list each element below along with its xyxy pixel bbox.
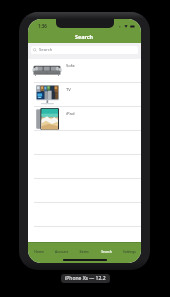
button[interactable]: Search xyxy=(31,46,138,54)
button[interactable]: Account xyxy=(50,249,72,263)
button[interactable]: Home xyxy=(28,249,50,263)
staticText: Sofa xyxy=(66,63,75,69)
staticText: Search xyxy=(39,47,53,53)
button[interactable]: Sofa xyxy=(28,59,141,83)
button[interactable]: Settings xyxy=(118,249,141,263)
staticText: Settings xyxy=(123,249,136,254)
button[interactable]: iPad xyxy=(28,107,141,131)
staticText: Search xyxy=(75,33,94,40)
staticText: Home xyxy=(34,249,44,254)
button[interactable]: Items xyxy=(72,249,95,263)
staticText: iPhone Xs — 12.2 xyxy=(65,275,106,282)
staticText: TV xyxy=(66,87,71,93)
button[interactable]: TV xyxy=(28,83,141,107)
staticText: iPad xyxy=(66,111,75,117)
staticText: Items xyxy=(79,249,89,254)
button[interactable]: Search xyxy=(95,249,118,263)
staticText: Account xyxy=(55,249,68,254)
staticText: 1:36 xyxy=(38,23,47,29)
staticText: Search xyxy=(101,249,112,254)
